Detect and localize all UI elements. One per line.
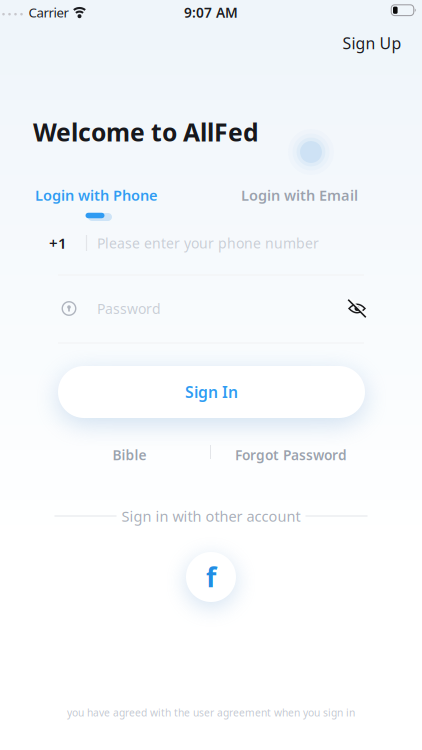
button[interactable]: Bible — [112, 446, 146, 464]
staticText: f — [206, 559, 216, 595]
staticText: Bible — [112, 446, 146, 464]
button[interactable]: Login with Email — [241, 185, 358, 205]
staticText: Welcome to AllFed — [33, 115, 259, 149]
staticText: Please enter your phone number — [97, 233, 319, 253]
staticText: Login with Phone — [35, 185, 158, 205]
staticText: Sign Up — [342, 32, 401, 54]
button[interactable]: Forgot Password — [235, 446, 347, 464]
button[interactable]: Show password — [345, 296, 369, 320]
staticText: you have agreed with the user agreement … — [67, 705, 355, 719]
staticText: Login with Email — [241, 185, 358, 205]
button[interactable]: Sign Up — [342, 32, 401, 54]
button[interactable]: Login with Phone — [35, 185, 158, 205]
staticText: Carrier — [28, 3, 68, 21]
staticText: Sign in with other account — [121, 506, 300, 526]
staticText: Sign In — [185, 381, 238, 403]
staticText: Forgot Password — [235, 446, 347, 464]
staticText: +1 — [49, 233, 67, 253]
staticText: Password — [97, 299, 161, 318]
button[interactable]: Sign in with Facebook — [186, 552, 236, 602]
button[interactable]: Sign In — [58, 366, 365, 418]
staticText: 9:07 AM — [184, 3, 238, 22]
